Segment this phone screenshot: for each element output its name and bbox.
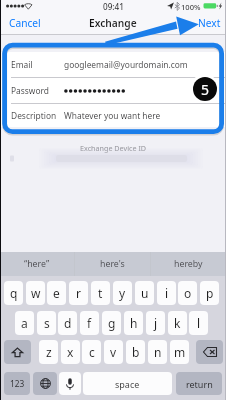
staticText: c (89, 344, 95, 360)
staticText: s (44, 315, 50, 331)
staticText: 5 (201, 80, 210, 99)
button[interactable]: here's (75, 252, 150, 276)
button[interactable]: e (47, 281, 66, 305)
button[interactable]: o (178, 281, 197, 305)
button[interactable]: space (83, 372, 172, 395)
button[interactable]: d (58, 311, 77, 335)
button[interactable]: Change keyboard (33, 372, 57, 395)
button[interactable]: l (189, 311, 208, 335)
button[interactable]: Description (0, 104, 226, 127)
button[interactable]: Shift (4, 340, 31, 364)
staticText: Cancel (9, 16, 41, 30)
button[interactable]: q (4, 281, 23, 305)
staticText: return (186, 378, 213, 390)
button[interactable]: p (200, 281, 219, 305)
staticText: k (174, 315, 181, 331)
staticText: Password (11, 85, 49, 96)
staticText: j (154, 315, 158, 331)
staticText: space (115, 378, 140, 390)
staticText: e (53, 285, 60, 301)
button[interactable]: x (61, 340, 80, 364)
button[interactable]: a (15, 311, 34, 335)
button[interactable]: Cancel (8, 14, 42, 32)
staticText: 09:41 (103, 1, 124, 12)
staticText: hereby (174, 258, 203, 270)
button[interactable]: t (91, 281, 110, 305)
button[interactable]: v (104, 340, 123, 364)
staticText: t (98, 285, 103, 301)
staticText: m (174, 344, 186, 360)
staticText: y (119, 285, 126, 301)
staticText: a (21, 315, 28, 331)
staticText: Description (11, 110, 57, 121)
button[interactable]: r (69, 281, 88, 305)
staticText: 100% (181, 2, 201, 12)
staticText: p (206, 285, 214, 301)
staticText: “here” (24, 258, 50, 270)
button[interactable]: m (170, 340, 189, 364)
staticText: Exchange Device ID (80, 143, 147, 153)
staticText: Exchange (89, 16, 137, 30)
button[interactable]: Password (0, 78, 226, 103)
staticText: x (67, 344, 74, 360)
staticText: here's (100, 258, 125, 270)
button[interactable]: j (146, 311, 165, 335)
button[interactable]: w (26, 281, 45, 305)
button[interactable]: return (176, 372, 222, 395)
button[interactable]: f (80, 311, 99, 335)
button[interactable]: “here” (0, 252, 74, 276)
staticText: u (141, 285, 149, 301)
button[interactable]: b (126, 340, 145, 364)
staticText: b (132, 344, 140, 360)
button[interactable]: n (148, 340, 167, 364)
button[interactable]: Dictation (59, 372, 81, 395)
staticText: l (197, 315, 201, 331)
button[interactable]: i (157, 281, 176, 305)
staticText: w (31, 285, 41, 301)
staticText: h (130, 315, 138, 331)
staticText: f (87, 315, 92, 331)
button[interactable]: y (113, 281, 132, 305)
button[interactable]: s (37, 311, 56, 335)
staticText: g (108, 315, 116, 331)
staticText: n (154, 344, 162, 360)
staticText: z (46, 344, 52, 360)
button[interactable]: hereby (151, 252, 226, 276)
staticText: Email (11, 59, 33, 70)
button[interactable]: c (82, 340, 101, 364)
button[interactable]: Next (197, 14, 222, 32)
button[interactable]: u (135, 281, 154, 305)
staticText: v (110, 344, 117, 360)
button[interactable]: Backspace (196, 340, 223, 364)
staticText: i (165, 285, 169, 301)
button[interactable]: Email (0, 52, 226, 77)
staticText: 123 (10, 378, 25, 389)
staticText: Next (198, 16, 221, 30)
button[interactable]: z (39, 340, 58, 364)
staticText: d (64, 315, 72, 331)
staticText: Whatever you want here (64, 110, 161, 121)
staticText: o (184, 285, 192, 301)
staticText: r (76, 285, 81, 301)
staticText: q (10, 285, 18, 301)
staticText: googleemail@yourdomain.com (64, 59, 188, 70)
button[interactable]: 123 (4, 372, 30, 395)
button[interactable]: g (102, 311, 121, 335)
button[interactable]: k (168, 311, 187, 335)
button[interactable]: h (124, 311, 143, 335)
